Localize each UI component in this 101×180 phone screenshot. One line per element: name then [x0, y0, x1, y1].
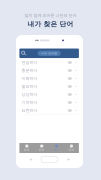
staticText: 연습하다 — [21, 60, 37, 65]
staticText: 충분하다 — [21, 68, 37, 73]
staticText: 이해하다 — [21, 76, 37, 81]
staticText: 단어 — [68, 148, 74, 152]
button[interactable]: 나의 단어장 — [19, 48, 79, 58]
button[interactable]: 연습하다 — [19, 58, 79, 66]
staticText: 기억하다 — [21, 100, 37, 105]
button[interactable]: 표현하다 — [19, 106, 79, 114]
staticText: 잊지 않게 모아둔 나만의 단어 — [24, 13, 76, 18]
staticText: 내가 찾은 단어 — [27, 20, 73, 28]
staticText: 나의 단어장 — [41, 52, 57, 55]
button[interactable]: 상상하다 — [19, 90, 79, 98]
button[interactable]: 이해하다 — [19, 74, 79, 82]
staticText: 표현하다 — [21, 108, 37, 113]
button[interactable]: 충분하다 — [19, 66, 79, 74]
staticText: 상상하다 — [21, 92, 37, 97]
button[interactable]: Tab — [49, 143, 64, 153]
staticText: 단어 — [54, 148, 60, 152]
button[interactable]: Tab — [64, 143, 79, 153]
staticText: 단어 — [39, 148, 45, 152]
staticText: 단어 — [24, 148, 30, 152]
button[interactable]: 발표하다 — [19, 82, 79, 90]
button[interactable]: 기억하다 — [19, 98, 79, 106]
button[interactable]: Tab — [19, 143, 34, 153]
button[interactable]: Tab — [34, 143, 49, 153]
staticText: 발표하다 — [21, 84, 37, 89]
